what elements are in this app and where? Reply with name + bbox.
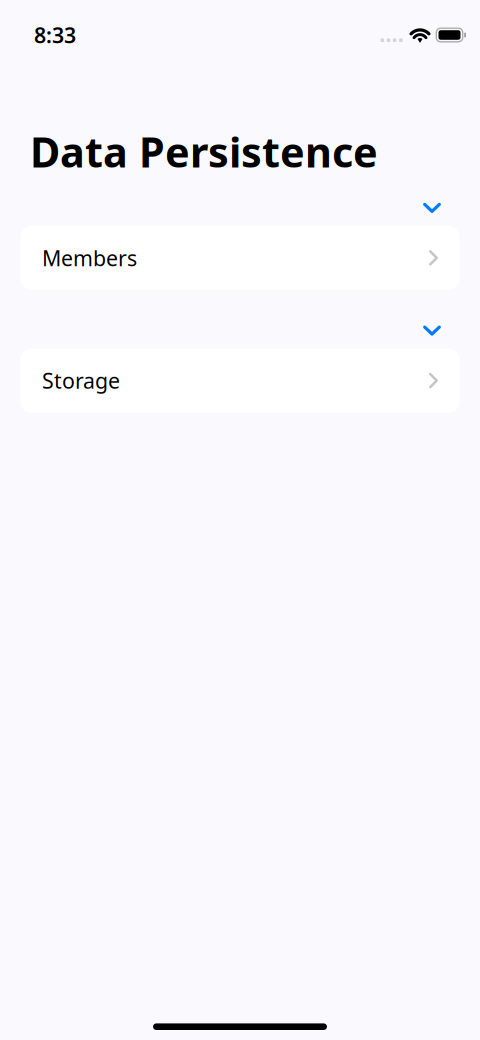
staticText: Members	[42, 244, 137, 272]
button[interactable]: Collapse Storage section	[410, 316, 454, 346]
button[interactable]: Storage	[20, 349, 459, 413]
button[interactable]: Collapse Members section	[410, 193, 454, 223]
button[interactable]: Members	[20, 226, 459, 290]
staticText: Storage	[42, 366, 120, 395]
staticText: Data Persistence	[30, 124, 378, 179]
staticText: 8:33	[34, 21, 76, 49]
